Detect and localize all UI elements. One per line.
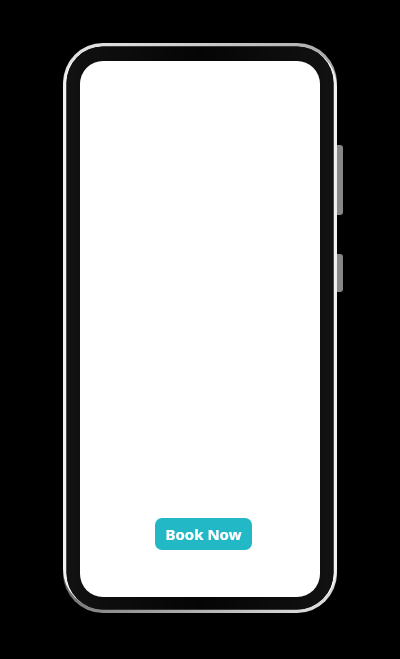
- button[interactable]: Book Now: [155, 518, 252, 550]
- staticText: Book Now: [165, 524, 242, 544]
